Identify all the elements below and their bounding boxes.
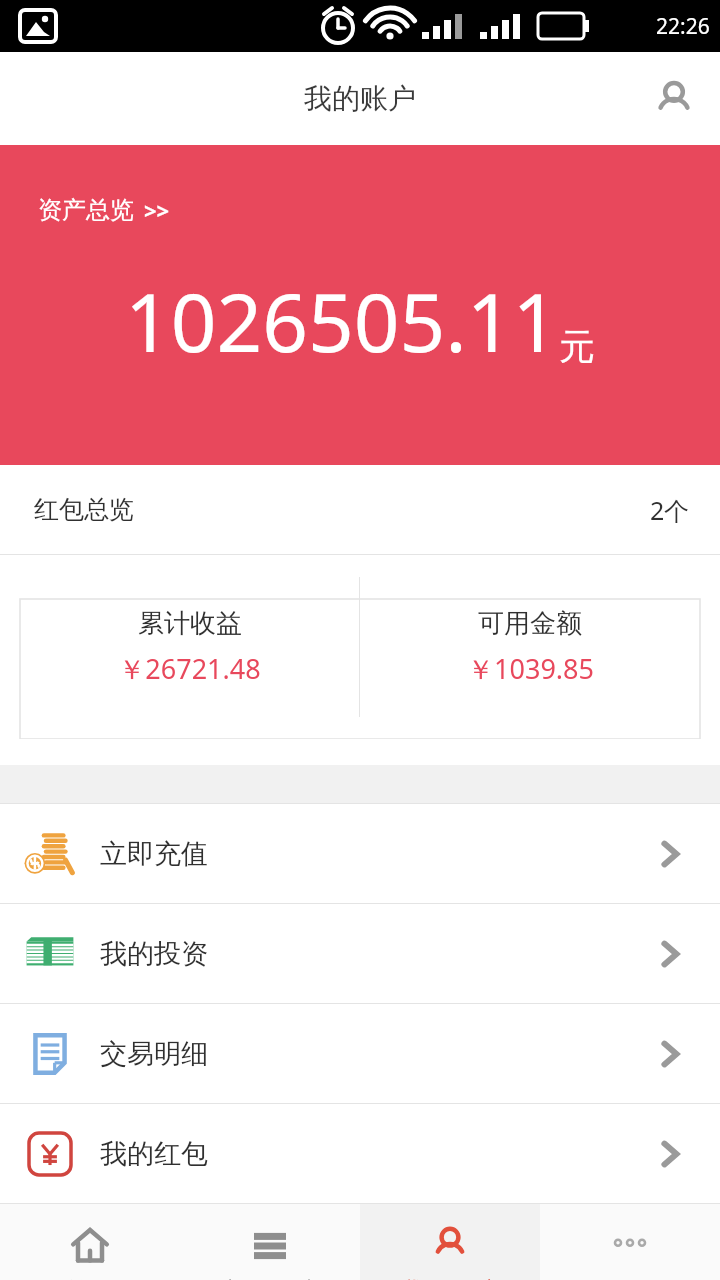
staticText: 我的投资 bbox=[100, 937, 208, 971]
staticText: 2个 bbox=[650, 493, 690, 527]
staticText: ￥1039.85 bbox=[467, 650, 594, 687]
staticText: >> bbox=[144, 195, 170, 225]
button[interactable]: 产品列表 bbox=[180, 1204, 360, 1280]
staticText: 元 bbox=[559, 324, 595, 369]
button[interactable]: 我的红包 bbox=[0, 1104, 720, 1203]
button[interactable]: 资产总览 bbox=[0, 145, 720, 465]
button[interactable]: 红包总览 bbox=[0, 465, 720, 554]
button[interactable]: 可用金额 bbox=[360, 577, 700, 717]
button[interactable]: 更多 bbox=[540, 1204, 720, 1280]
staticText: 我的红包 bbox=[100, 1137, 208, 1171]
staticText: 我的账户 bbox=[304, 81, 416, 116]
staticText: 资产总览 bbox=[38, 195, 134, 225]
staticText: 红包总览 bbox=[34, 494, 134, 525]
button[interactable]: 立即充值 bbox=[0, 804, 720, 903]
button[interactable]: 累计收益 bbox=[20, 577, 359, 717]
button[interactable]: 我的投资 bbox=[0, 904, 720, 1003]
staticText: 累计收益 bbox=[138, 607, 242, 640]
button[interactable]: Profile bbox=[648, 73, 700, 125]
staticText: 可用金额 bbox=[478, 607, 582, 640]
button[interactable]: 我的账户 bbox=[360, 1204, 540, 1280]
staticText: ￥26721.48 bbox=[118, 650, 261, 687]
staticText: 产品列表 bbox=[218, 1276, 322, 1280]
staticText: 我的账户 bbox=[398, 1276, 502, 1280]
button[interactable]: 首页 bbox=[0, 1204, 180, 1280]
staticText: 22:26 bbox=[656, 12, 710, 41]
staticText: 立即充值 bbox=[100, 837, 208, 871]
button[interactable]: 交易明细 bbox=[0, 1004, 720, 1103]
staticText: 1026505.11 bbox=[125, 266, 559, 375]
staticText: 交易明细 bbox=[100, 1037, 208, 1071]
